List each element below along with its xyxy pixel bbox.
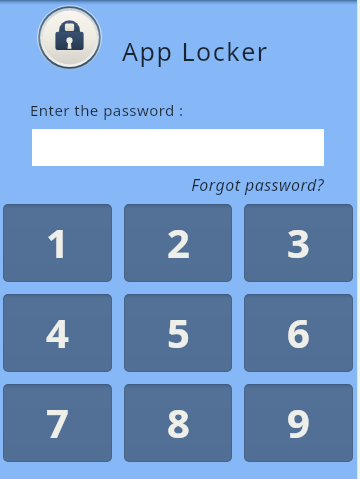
staticText: App Locker bbox=[122, 34, 269, 68]
staticText: 1 bbox=[46, 215, 69, 269]
staticText: 5 bbox=[167, 305, 190, 359]
button[interactable]: 5 bbox=[124, 294, 232, 372]
button[interactable]: 1 bbox=[3, 204, 112, 282]
button[interactable]: 9 bbox=[244, 384, 353, 462]
button[interactable]: App Locker logo bbox=[37, 5, 102, 70]
staticText: 4 bbox=[46, 305, 69, 359]
button[interactable]: 7 bbox=[3, 384, 112, 462]
staticText: 3 bbox=[287, 215, 310, 269]
staticText: Forgot password? bbox=[32, 174, 324, 196]
button[interactable]: 8 bbox=[124, 384, 232, 462]
staticText: 6 bbox=[287, 305, 310, 359]
staticText: Enter the password : bbox=[30, 100, 184, 120]
button[interactable]: 6 bbox=[244, 294, 353, 372]
staticText: 8 bbox=[167, 395, 190, 449]
button[interactable]: 2 bbox=[124, 204, 232, 282]
staticText: 7 bbox=[46, 395, 69, 449]
staticText: 9 bbox=[287, 395, 310, 449]
button[interactable]: 4 bbox=[3, 294, 112, 372]
button[interactable]: Forgot password? bbox=[32, 174, 324, 196]
button[interactable]: 3 bbox=[244, 204, 353, 282]
staticText: 2 bbox=[167, 215, 190, 269]
